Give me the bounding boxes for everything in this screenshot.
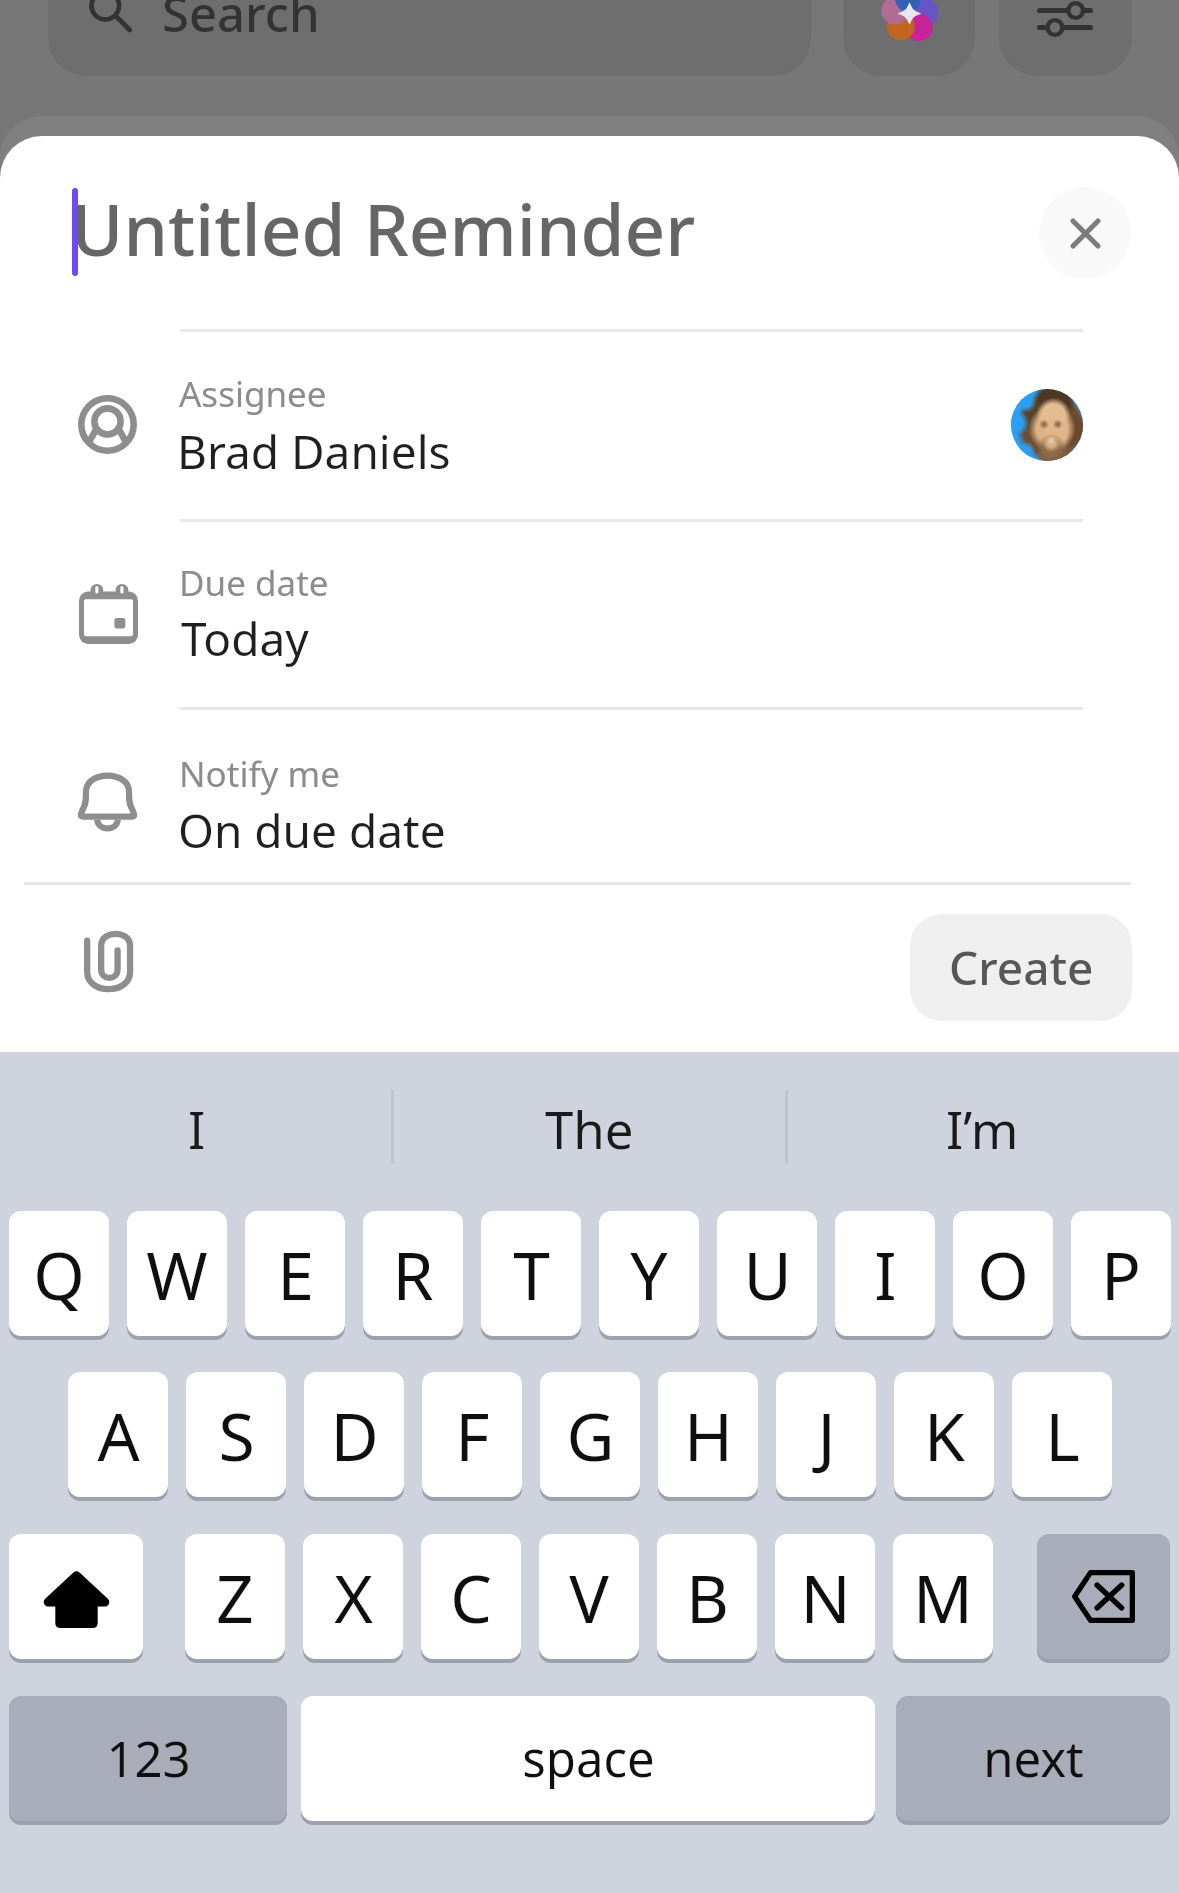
- button[interactable]: I: [835, 1211, 935, 1336]
- button[interactable]: G: [540, 1372, 640, 1497]
- staticText: space: [522, 1725, 655, 1792]
- staticText: F: [455, 1390, 490, 1480]
- staticText: Y: [630, 1229, 668, 1319]
- staticText: W: [146, 1229, 208, 1319]
- staticText: Create: [949, 936, 1094, 999]
- button[interactable]: R: [363, 1211, 463, 1336]
- button[interactable]: D: [304, 1372, 404, 1497]
- button[interactable]: B: [657, 1534, 757, 1659]
- staticText: Search: [162, 0, 320, 47]
- button[interactable]: P: [1071, 1211, 1171, 1336]
- staticText: next: [983, 1725, 1084, 1792]
- button[interactable]: I: [0, 1052, 393, 1200]
- staticText: Notify me: [179, 750, 340, 798]
- button[interactable]: Notify me: [0, 710, 1179, 882]
- staticText: K: [924, 1390, 965, 1480]
- staticText: I: [874, 1229, 897, 1319]
- staticText: Today: [181, 607, 309, 670]
- button[interactable]: Add attachment: [72, 926, 144, 998]
- staticText: The: [545, 1094, 634, 1163]
- button[interactable]: I’m: [786, 1052, 1179, 1200]
- staticText: T: [513, 1229, 550, 1319]
- staticText: G: [566, 1390, 615, 1480]
- button[interactable]: K: [894, 1372, 994, 1497]
- button[interactable]: Filter: [999, 0, 1132, 76]
- button[interactable]: E: [245, 1211, 345, 1336]
- button[interactable]: Ask Gemini: [843, 0, 975, 76]
- button[interactable]: X: [303, 1534, 403, 1659]
- button[interactable]: Shift: [9, 1534, 143, 1659]
- staticText: J: [817, 1390, 836, 1480]
- staticText: I’m: [946, 1094, 1019, 1163]
- staticText: I: [188, 1094, 206, 1163]
- staticText: R: [392, 1229, 434, 1319]
- button[interactable]: Create: [910, 914, 1132, 1021]
- button[interactable]: H: [658, 1372, 758, 1497]
- staticText: Due date: [179, 559, 329, 607]
- button[interactable]: S: [186, 1372, 286, 1497]
- staticText: A: [97, 1390, 140, 1480]
- staticText: Q: [33, 1229, 85, 1319]
- button[interactable]: U: [717, 1211, 817, 1336]
- button[interactable]: Close: [1039, 187, 1131, 279]
- button[interactable]: V: [539, 1534, 639, 1659]
- button[interactable]: F: [422, 1372, 522, 1497]
- staticText: O: [977, 1229, 1029, 1319]
- staticText: V: [569, 1552, 609, 1642]
- button[interactable]: A: [68, 1372, 168, 1497]
- button[interactable]: T: [481, 1211, 581, 1336]
- staticText: Z: [216, 1552, 254, 1642]
- staticText: E: [277, 1229, 314, 1319]
- staticText: Assignee: [179, 370, 327, 418]
- button[interactable]: N: [775, 1534, 875, 1659]
- button[interactable]: Z: [185, 1534, 285, 1659]
- staticText: On due date: [178, 799, 446, 862]
- button[interactable]: Due date: [0, 522, 1179, 707]
- button[interactable]: space: [301, 1696, 875, 1821]
- staticText: Brad Daniels: [177, 420, 451, 483]
- staticText: 123: [106, 1725, 191, 1792]
- button[interactable]: J: [776, 1372, 876, 1497]
- staticText: X: [334, 1552, 373, 1642]
- button[interactable]: C: [421, 1534, 521, 1659]
- button[interactable]: L: [1012, 1372, 1112, 1497]
- staticText: L: [1045, 1390, 1080, 1480]
- staticText: P: [1101, 1229, 1141, 1319]
- button[interactable]: next: [896, 1696, 1170, 1821]
- staticText: S: [218, 1390, 255, 1480]
- button[interactable]: W: [127, 1211, 227, 1336]
- staticText: C: [450, 1552, 492, 1642]
- button[interactable]: Assignee: [0, 332, 1179, 519]
- button[interactable]: Y: [599, 1211, 699, 1336]
- button[interactable]: M: [893, 1534, 993, 1659]
- button[interactable]: Search: [48, 0, 811, 76]
- button[interactable]: 123: [9, 1696, 287, 1821]
- button[interactable]: Q: [9, 1211, 109, 1336]
- staticText: H: [684, 1390, 733, 1480]
- button[interactable]: Backspace: [1037, 1534, 1170, 1659]
- staticText: B: [686, 1552, 729, 1642]
- staticText: D: [330, 1390, 379, 1480]
- staticText: U: [743, 1229, 792, 1319]
- button[interactable]: The: [393, 1052, 786, 1200]
- staticText: M: [913, 1552, 973, 1642]
- staticText: Untitled Reminder: [71, 180, 696, 277]
- staticText: N: [800, 1552, 851, 1642]
- button[interactable]: O: [953, 1211, 1053, 1336]
